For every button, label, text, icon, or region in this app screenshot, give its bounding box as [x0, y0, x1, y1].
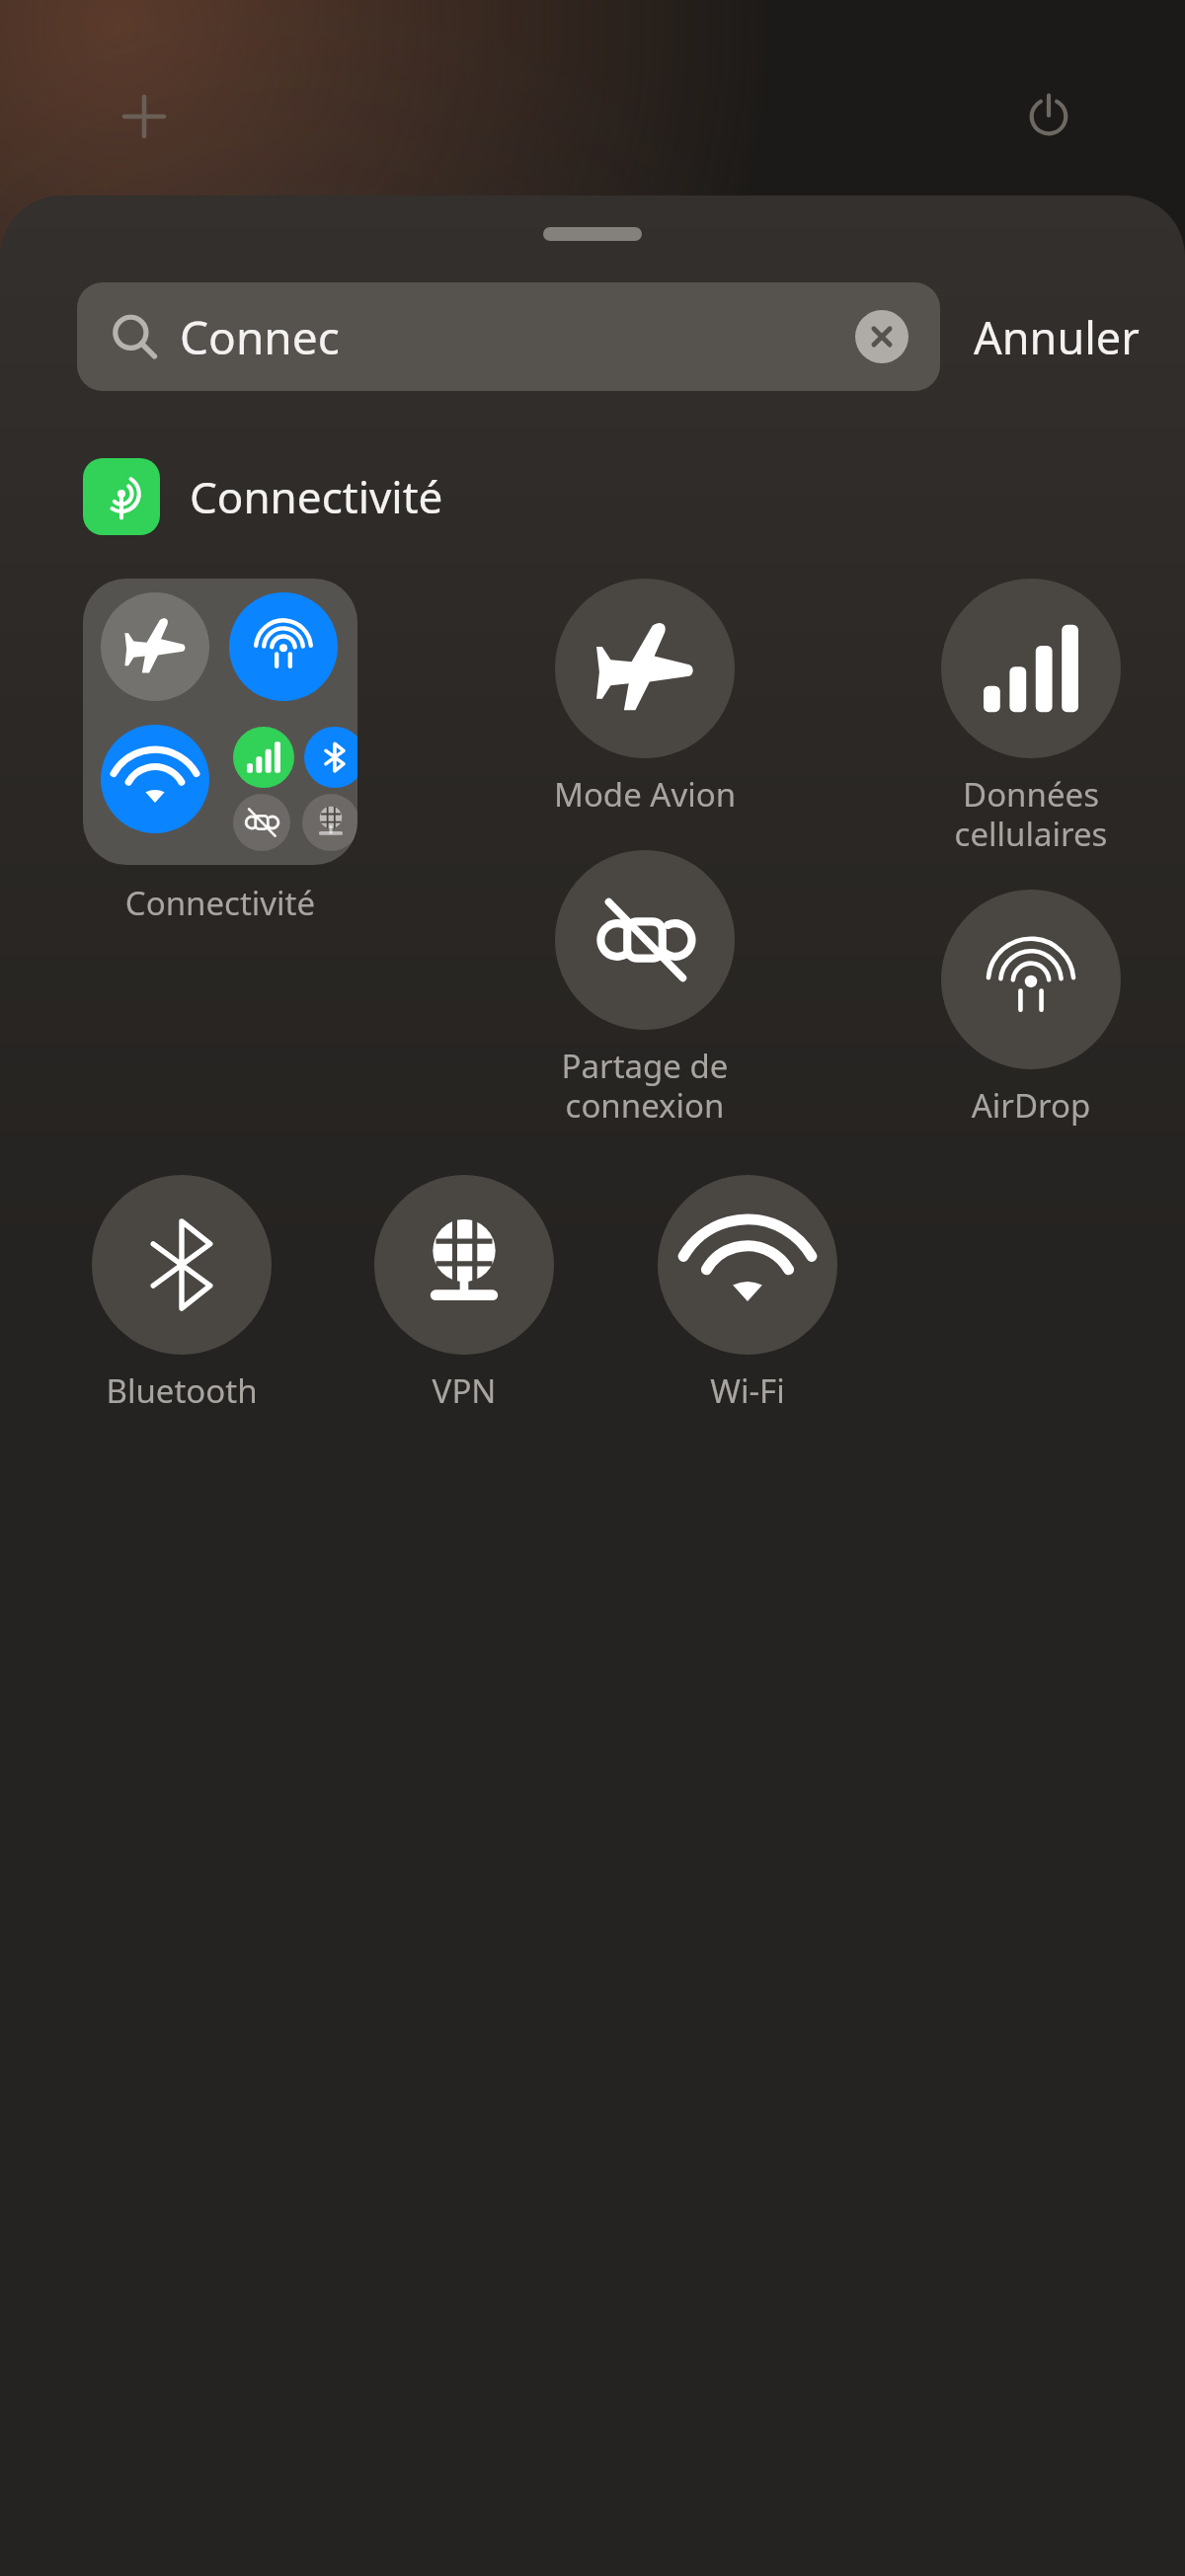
button[interactable]: Add control [109, 81, 180, 152]
staticText: Partage de connexion [546, 1044, 744, 1128]
button[interactable]: Mode Avion [546, 579, 744, 817]
button[interactable]: Wi-Fi [649, 1175, 846, 1413]
button[interactable]: Connec [109, 282, 908, 391]
button[interactable]: Bluetooth [83, 1175, 280, 1413]
staticText: AirDrop [932, 1083, 1130, 1128]
staticText: VPN [365, 1368, 563, 1413]
button[interactable]: Clear search [855, 310, 908, 363]
button[interactable]: Partage de connexion [546, 850, 744, 1128]
button[interactable]: Données cellulaires [932, 579, 1130, 856]
staticText: Mode Avion [546, 772, 744, 817]
button[interactable]: Annuler [968, 299, 1145, 375]
staticText: Bluetooth [83, 1368, 280, 1413]
staticText: Données cellulaires [932, 772, 1130, 856]
button[interactable]: Connectivité [83, 458, 1185, 535]
staticText: Connectivité [104, 881, 337, 925]
button[interactable]: AirDrop [932, 890, 1130, 1128]
staticText: Wi-Fi [649, 1368, 846, 1413]
staticText: Annuler [974, 307, 1140, 367]
staticText: Connectivité [190, 467, 443, 526]
staticText: Connec [180, 306, 340, 368]
button[interactable]: Power off [1011, 77, 1086, 152]
button[interactable]: Connectivity controls [83, 579, 357, 865]
button[interactable]: VPN [365, 1175, 563, 1413]
